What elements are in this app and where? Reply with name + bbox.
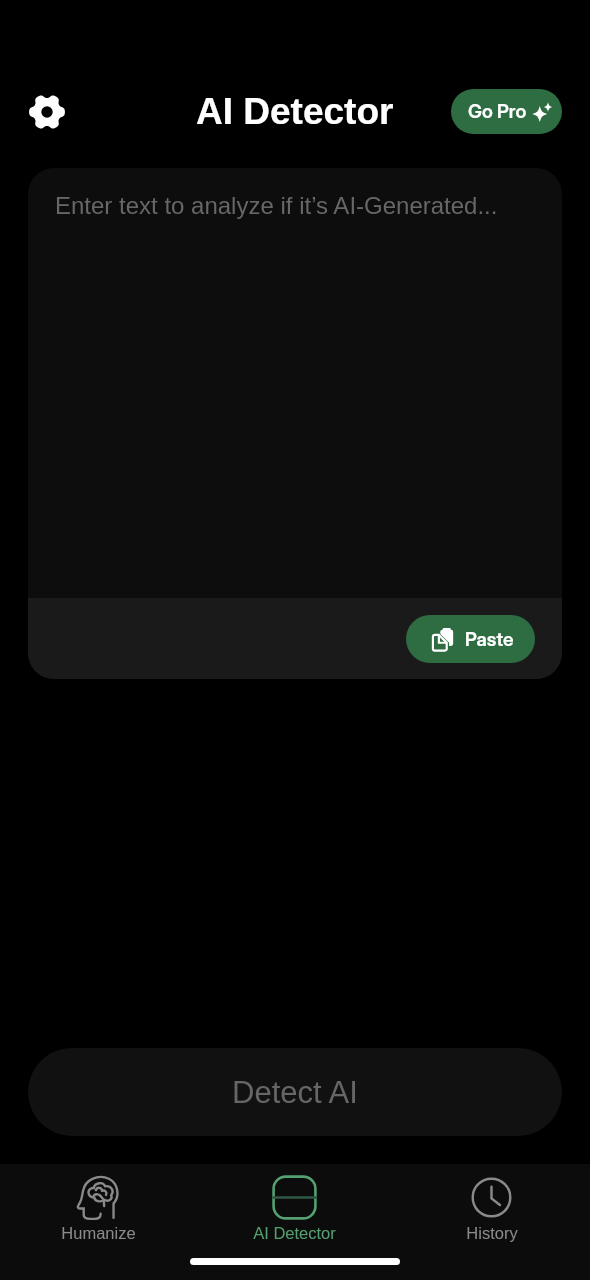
staticText: Go Pro — [468, 100, 527, 123]
staticText: Detect AI — [232, 1075, 358, 1110]
staticText: AI Detector — [253, 1224, 336, 1242]
staticText: Paste — [465, 628, 514, 651]
staticText: AI Detector — [196, 91, 394, 132]
button[interactable]: Settings — [18, 83, 76, 141]
button[interactable]: Go Pro — [451, 89, 562, 134]
staticText: Enter text to analyze if it’s AI-Generat… — [55, 192, 498, 219]
staticText: History — [466, 1224, 518, 1242]
staticText: Humanize — [61, 1224, 136, 1242]
button[interactable]: Humanize — [0, 1164, 196, 1242]
button[interactable]: Detect AI — [28, 1048, 562, 1136]
button[interactable]: Paste — [406, 615, 535, 663]
button[interactable]: AI Detector — [196, 1164, 393, 1242]
button[interactable]: Enter text to analyze if it’s AI-Generat… — [28, 168, 562, 598]
button[interactable]: History — [393, 1164, 590, 1242]
